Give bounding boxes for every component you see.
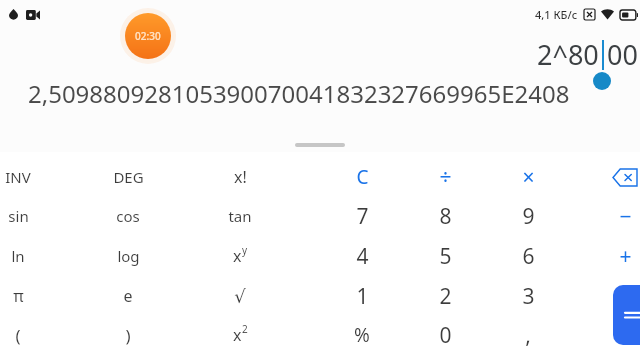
button[interactable]: 2 xyxy=(408,277,482,315)
button[interactable]: ÷ xyxy=(408,158,482,196)
staticText: 2 xyxy=(439,282,452,311)
button[interactable]: ) xyxy=(91,316,165,354)
staticText: DEG xyxy=(113,167,144,187)
staticText: ÷ xyxy=(439,163,452,192)
staticText: 1 xyxy=(356,282,369,311)
staticText: ) xyxy=(125,324,131,347)
button[interactable]: x xyxy=(203,316,277,354)
button[interactable]: π xyxy=(0,277,55,315)
button[interactable]: ln xyxy=(0,237,55,275)
staticText: − xyxy=(619,202,632,231)
staticText: x xyxy=(233,324,242,346)
button[interactable]: ( xyxy=(0,316,55,354)
staticText: log xyxy=(117,246,140,266)
staticText: 7 xyxy=(356,202,369,231)
staticText: 4 xyxy=(356,242,369,271)
staticText: + xyxy=(619,242,632,271)
staticText: x! xyxy=(234,166,247,188)
button[interactable]: cos xyxy=(91,197,165,235)
staticText: 0 xyxy=(439,321,452,350)
button[interactable]: tan xyxy=(203,197,277,235)
staticText: 3 xyxy=(522,282,535,311)
staticText: 8 xyxy=(439,202,452,231)
staticText: 00 xyxy=(607,36,638,73)
staticText: e xyxy=(123,285,133,307)
staticText: √ xyxy=(234,286,246,307)
staticText: 02:30 xyxy=(135,29,161,43)
button[interactable]: , xyxy=(491,316,565,354)
staticText: 5 xyxy=(439,242,452,271)
staticText: 4,1 КБ/с xyxy=(535,7,578,22)
button[interactable]: 6 xyxy=(491,237,565,275)
button[interactable]: 0 xyxy=(408,316,482,354)
staticText: x xyxy=(233,245,242,267)
staticText: 6 xyxy=(522,242,535,271)
staticText: C xyxy=(356,164,369,190)
staticText: 2^80 xyxy=(537,36,599,73)
staticText: tan xyxy=(228,206,252,226)
staticText: 2,509880928105390070041832327669965E2408 xyxy=(28,77,570,110)
button[interactable]: e xyxy=(91,277,165,315)
staticText: INV xyxy=(5,167,31,187)
button[interactable]: % xyxy=(325,316,399,354)
staticText: × xyxy=(522,163,535,192)
button[interactable]: √ xyxy=(203,277,277,315)
button[interactable]: x xyxy=(203,237,277,275)
staticText: ( xyxy=(15,324,21,347)
button[interactable]: sin xyxy=(0,197,55,235)
button[interactable]: Backspace xyxy=(588,158,640,196)
staticText: π xyxy=(13,285,24,307)
button[interactable]: 7 xyxy=(325,197,399,235)
staticText: 9 xyxy=(522,202,535,231)
button[interactable]: 3 xyxy=(491,277,565,315)
staticText: 2 xyxy=(242,322,248,336)
staticText: % xyxy=(354,322,370,348)
button[interactable]: x! xyxy=(203,158,277,196)
button[interactable]: + xyxy=(588,237,640,275)
button[interactable]: 5 xyxy=(408,237,482,275)
staticText: , xyxy=(525,321,531,350)
button[interactable]: 4 xyxy=(325,237,399,275)
button[interactable]: C xyxy=(325,158,399,196)
staticText: cos xyxy=(116,206,140,226)
button[interactable]: log xyxy=(91,237,165,275)
button[interactable]: − xyxy=(588,197,640,235)
staticText: ln xyxy=(11,246,25,266)
button[interactable]: 8 xyxy=(408,197,482,235)
button[interactable]: 1 xyxy=(325,277,399,315)
button[interactable]: × xyxy=(491,158,565,196)
button[interactable]: INV xyxy=(0,158,55,196)
button[interactable]: DEG xyxy=(91,158,165,196)
button[interactable]: Equals xyxy=(613,285,640,345)
staticText: sin xyxy=(8,206,29,226)
staticText: y xyxy=(242,243,248,257)
button[interactable]: 9 xyxy=(491,197,565,235)
button[interactable]: Timer 02:30 xyxy=(125,13,171,59)
